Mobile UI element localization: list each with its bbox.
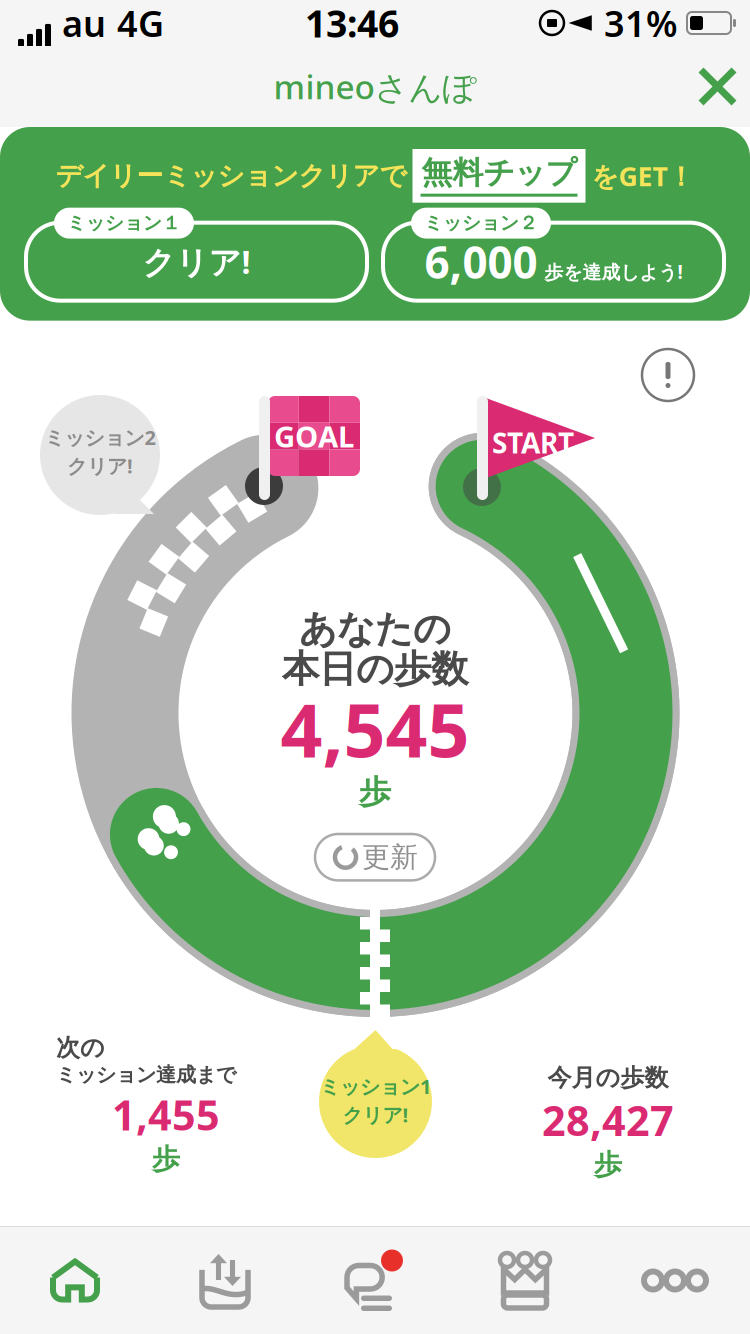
button[interactable]: Close: [685, 52, 750, 121]
staticText: ミッション1: [320, 1073, 431, 1100]
staticText: 本日の歩数: [282, 646, 468, 692]
staticText: ミッション２: [424, 212, 538, 235]
button[interactable]: Messages: [300, 1227, 450, 1334]
button[interactable]: Information: [642, 349, 694, 401]
button[interactable]: Home: [0, 1227, 150, 1334]
staticText: START: [492, 424, 574, 461]
staticText: 歩を達成しよう!: [544, 259, 682, 284]
button[interactable]: Ranking: [450, 1227, 600, 1334]
staticText: ミッション達成まで: [56, 1062, 236, 1087]
staticText: mineoさんぽ: [273, 64, 476, 109]
staticText: 4,545: [280, 680, 469, 778]
staticText: 1,455: [112, 1087, 220, 1142]
staticText: デイリーミッションクリアで: [55, 159, 406, 192]
staticText: 31%: [604, 0, 678, 47]
staticText: クリア!: [67, 453, 133, 479]
staticText: をGET！: [591, 158, 694, 193]
staticText: 更新: [362, 840, 418, 874]
button[interactable]: クリア!: [26, 223, 367, 301]
staticText: 13:46: [305, 0, 399, 48]
staticText: 4G: [117, 0, 164, 47]
button[interactable]: More: [600, 1227, 750, 1334]
button[interactable]: Exchange: [150, 1227, 300, 1334]
staticText: au: [62, 0, 106, 47]
button[interactable]: 更新: [315, 834, 435, 880]
staticText: 今月の歩数: [547, 1063, 668, 1092]
staticText: あなたの: [299, 606, 451, 652]
staticText: クリア!: [342, 1102, 408, 1128]
staticText: 6,000: [424, 232, 537, 291]
staticText: 歩: [359, 772, 391, 812]
staticText: 28,427: [542, 1092, 674, 1147]
staticText: GOAL: [274, 416, 354, 455]
staticText: 次の: [56, 1033, 105, 1062]
staticText: 無料チップ: [421, 154, 576, 192]
staticText: クリア!: [142, 240, 250, 283]
button[interactable]: 6,000: [383, 223, 724, 301]
staticText: ミッション１: [67, 212, 181, 235]
staticText: ミッション2: [44, 424, 155, 451]
staticText: 歩: [152, 1142, 180, 1176]
staticText: 歩: [594, 1147, 622, 1182]
